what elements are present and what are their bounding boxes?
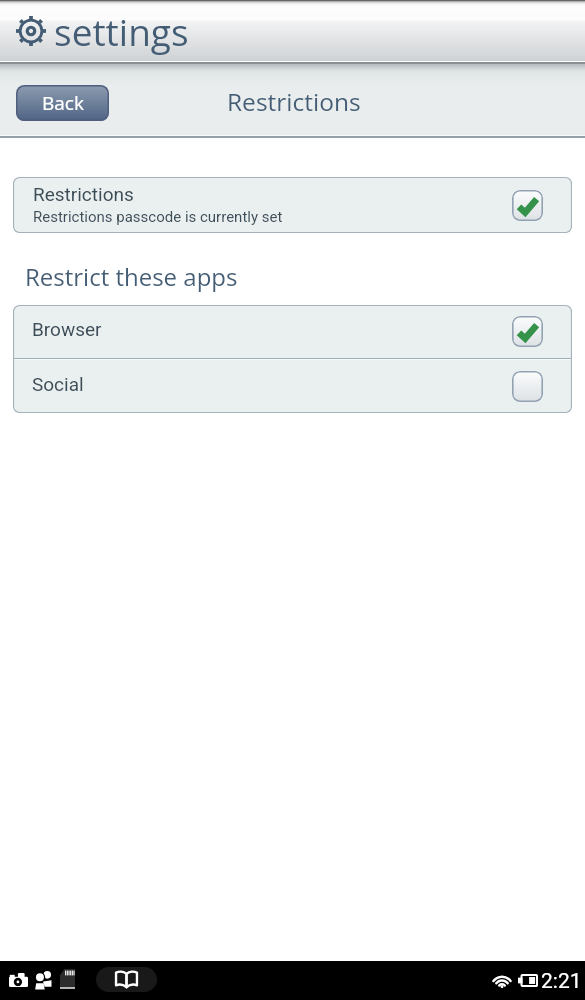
staticText: Social: [32, 373, 84, 395]
button[interactable]: Enabled: [512, 190, 543, 221]
button[interactable]: SD card: [53, 965, 81, 993]
staticText: Restrictions passcode is currently set: [33, 208, 283, 226]
staticText: Browser: [32, 318, 102, 340]
button[interactable]: Restrictions: [13, 177, 572, 233]
staticText: Restrictions: [33, 183, 134, 205]
button[interactable]: Users: [29, 966, 57, 994]
button[interactable]: Screenshot: [4, 966, 32, 994]
staticText: settings: [54, 6, 189, 56]
button[interactable]: Enabled: [512, 316, 543, 347]
button[interactable]: Social: [13, 360, 572, 413]
staticText: Restrictions: [227, 85, 361, 118]
button[interactable]: Books: [96, 967, 157, 992]
staticText: 2:21: [541, 969, 582, 994]
button[interactable]: Disabled: [512, 371, 543, 402]
button[interactable]: Browser: [13, 305, 572, 358]
staticText: Back: [42, 90, 84, 116]
button[interactable]: Back: [16, 85, 109, 121]
staticText: Restrict these apps: [25, 260, 238, 293]
